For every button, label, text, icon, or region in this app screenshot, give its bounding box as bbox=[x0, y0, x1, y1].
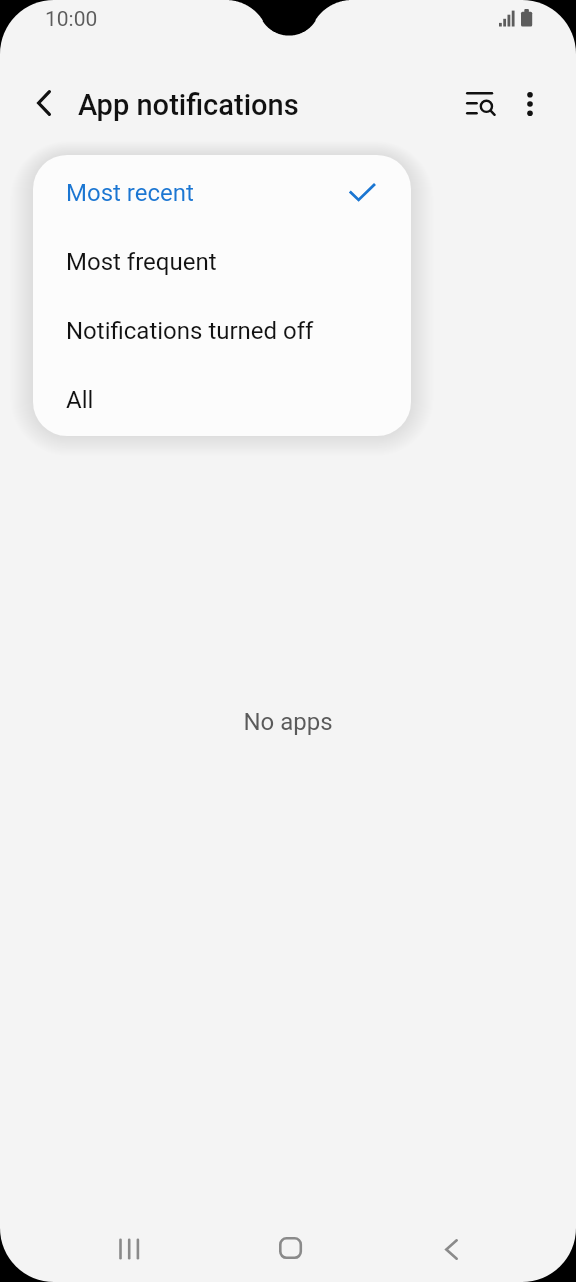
button[interactable]: Home bbox=[266, 1224, 314, 1272]
button[interactable]: All bbox=[33, 365, 411, 434]
staticText: Notifications turned off bbox=[66, 317, 314, 345]
button[interactable]: Most recent bbox=[33, 158, 411, 227]
button[interactable]: Search bbox=[459, 82, 503, 126]
staticText: No apps bbox=[0, 708, 576, 736]
button[interactable]: Back bbox=[22, 81, 66, 125]
staticText: 10:00 bbox=[45, 7, 98, 32]
staticText: Most recent bbox=[66, 179, 194, 207]
staticText: Most frequent bbox=[66, 248, 217, 276]
button[interactable]: Notifications turned off bbox=[33, 296, 411, 365]
button[interactable]: Back bbox=[427, 1225, 475, 1273]
button[interactable]: More options bbox=[508, 82, 552, 126]
staticText: All bbox=[66, 386, 94, 414]
button[interactable]: Most frequent bbox=[33, 227, 411, 296]
staticText: App notifications bbox=[78, 88, 299, 122]
button[interactable]: Recents bbox=[105, 1225, 153, 1273]
